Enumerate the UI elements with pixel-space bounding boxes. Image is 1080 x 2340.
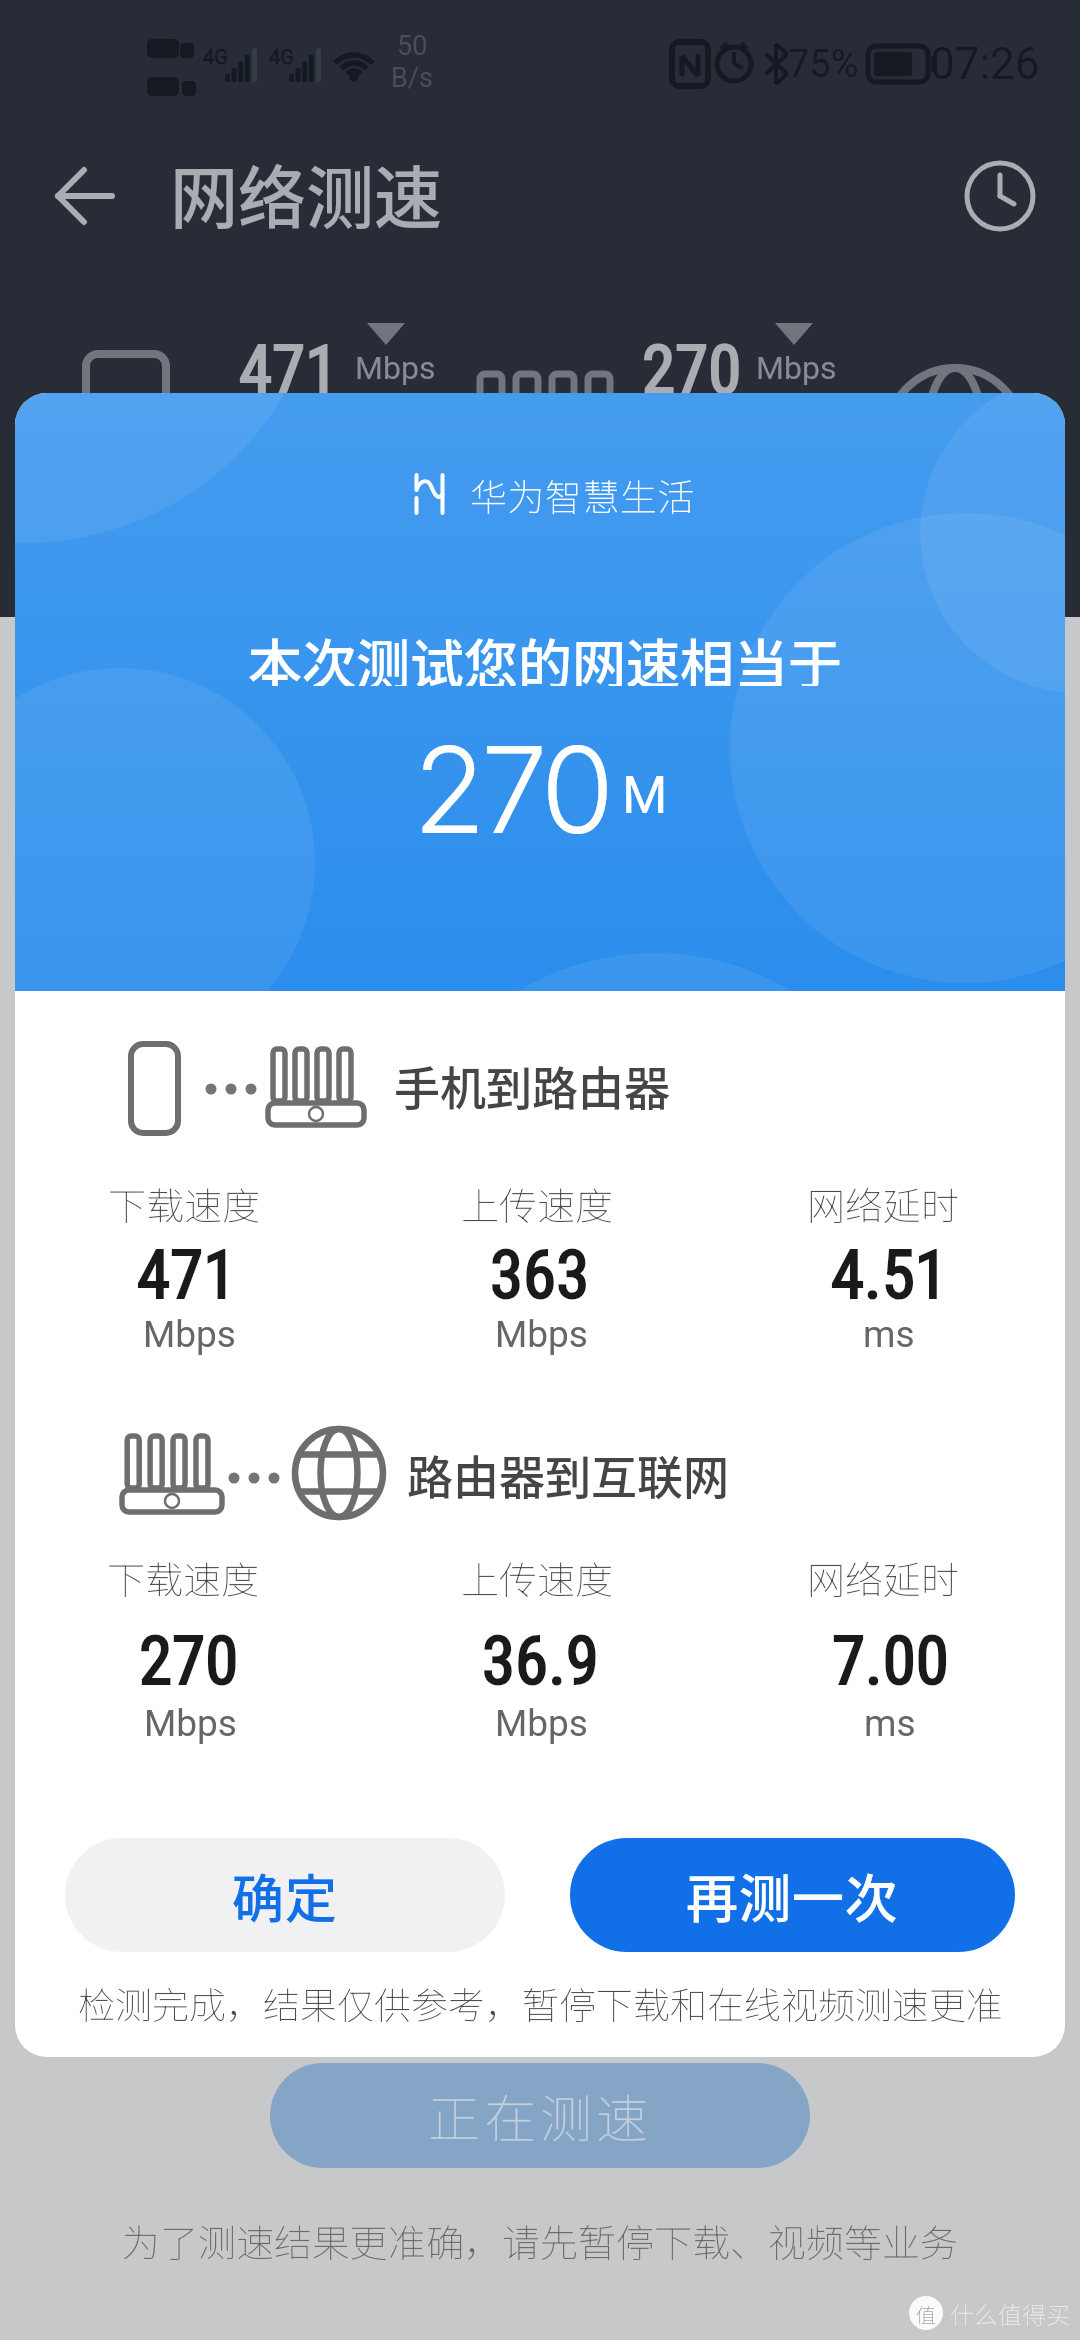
staticText: 07:26 [930, 38, 1040, 90]
staticText: 36.9 [482, 1622, 599, 1692]
staticText: 正在测速 [428, 2078, 653, 2153]
staticText: Mbps [144, 1702, 237, 1745]
button[interactable]: 确定 [65, 1838, 505, 1952]
staticText: 270 [413, 718, 610, 838]
staticText: 网络测速 [170, 144, 443, 236]
staticText: Mbps [495, 1702, 588, 1745]
button[interactable]: 再测一次 [570, 1838, 1015, 1952]
staticText: 75% [788, 42, 859, 87]
button[interactable] [40, 152, 136, 240]
staticText: 下载速度 [107, 1550, 260, 1600]
button[interactable]: 正在测速 [270, 2063, 810, 2168]
staticText: 270 [642, 331, 742, 410]
staticText: 4G [269, 45, 294, 68]
staticText: 上传速度 [461, 1176, 614, 1226]
staticText: 检测完成，结果仅供参考，暂停下载和在线视频测速更准 [78, 1976, 1003, 2028]
staticText: 471 [137, 1236, 237, 1306]
button[interactable] [952, 152, 1048, 240]
staticText: Mbps [495, 1313, 588, 1356]
staticText: 50 [397, 30, 428, 60]
staticText: 网络延时 [807, 1550, 960, 1600]
staticText: 4.51 [831, 1236, 948, 1306]
staticText: ms [864, 1702, 916, 1745]
staticText: 华为智慧生活 [470, 468, 695, 516]
staticText: 363 [490, 1236, 590, 1306]
staticText: Mbps [756, 349, 837, 387]
staticText: M [622, 765, 668, 826]
staticText: 再测一次 [686, 1858, 899, 1933]
staticText: 路由器到互联网 [407, 1441, 729, 1508]
staticText: 下载速度 [108, 1176, 261, 1226]
staticText: 本次测试您的网速相当于 [248, 622, 842, 686]
staticText: 网络延时 [807, 1176, 960, 1226]
staticText: 上传速度 [461, 1550, 614, 1600]
staticText: 为了测速结果更准确，请先暂停下载、视频等业务 [122, 2213, 959, 2268]
staticText: 471 [239, 331, 339, 410]
staticText: Mbps [143, 1313, 236, 1356]
staticText: ms [863, 1313, 915, 1356]
staticText: B/s [391, 62, 433, 94]
staticText: 4G [203, 45, 228, 68]
staticText: 确定 [232, 1858, 339, 1933]
staticText: Mbps [355, 349, 436, 387]
staticText: 270 [139, 1622, 239, 1692]
staticText: 值 [916, 2300, 936, 2329]
staticText: 7.00 [832, 1622, 949, 1692]
staticText: 什么值得买 [950, 2296, 1070, 2330]
staticText: 手机到路由器 [394, 1052, 670, 1119]
